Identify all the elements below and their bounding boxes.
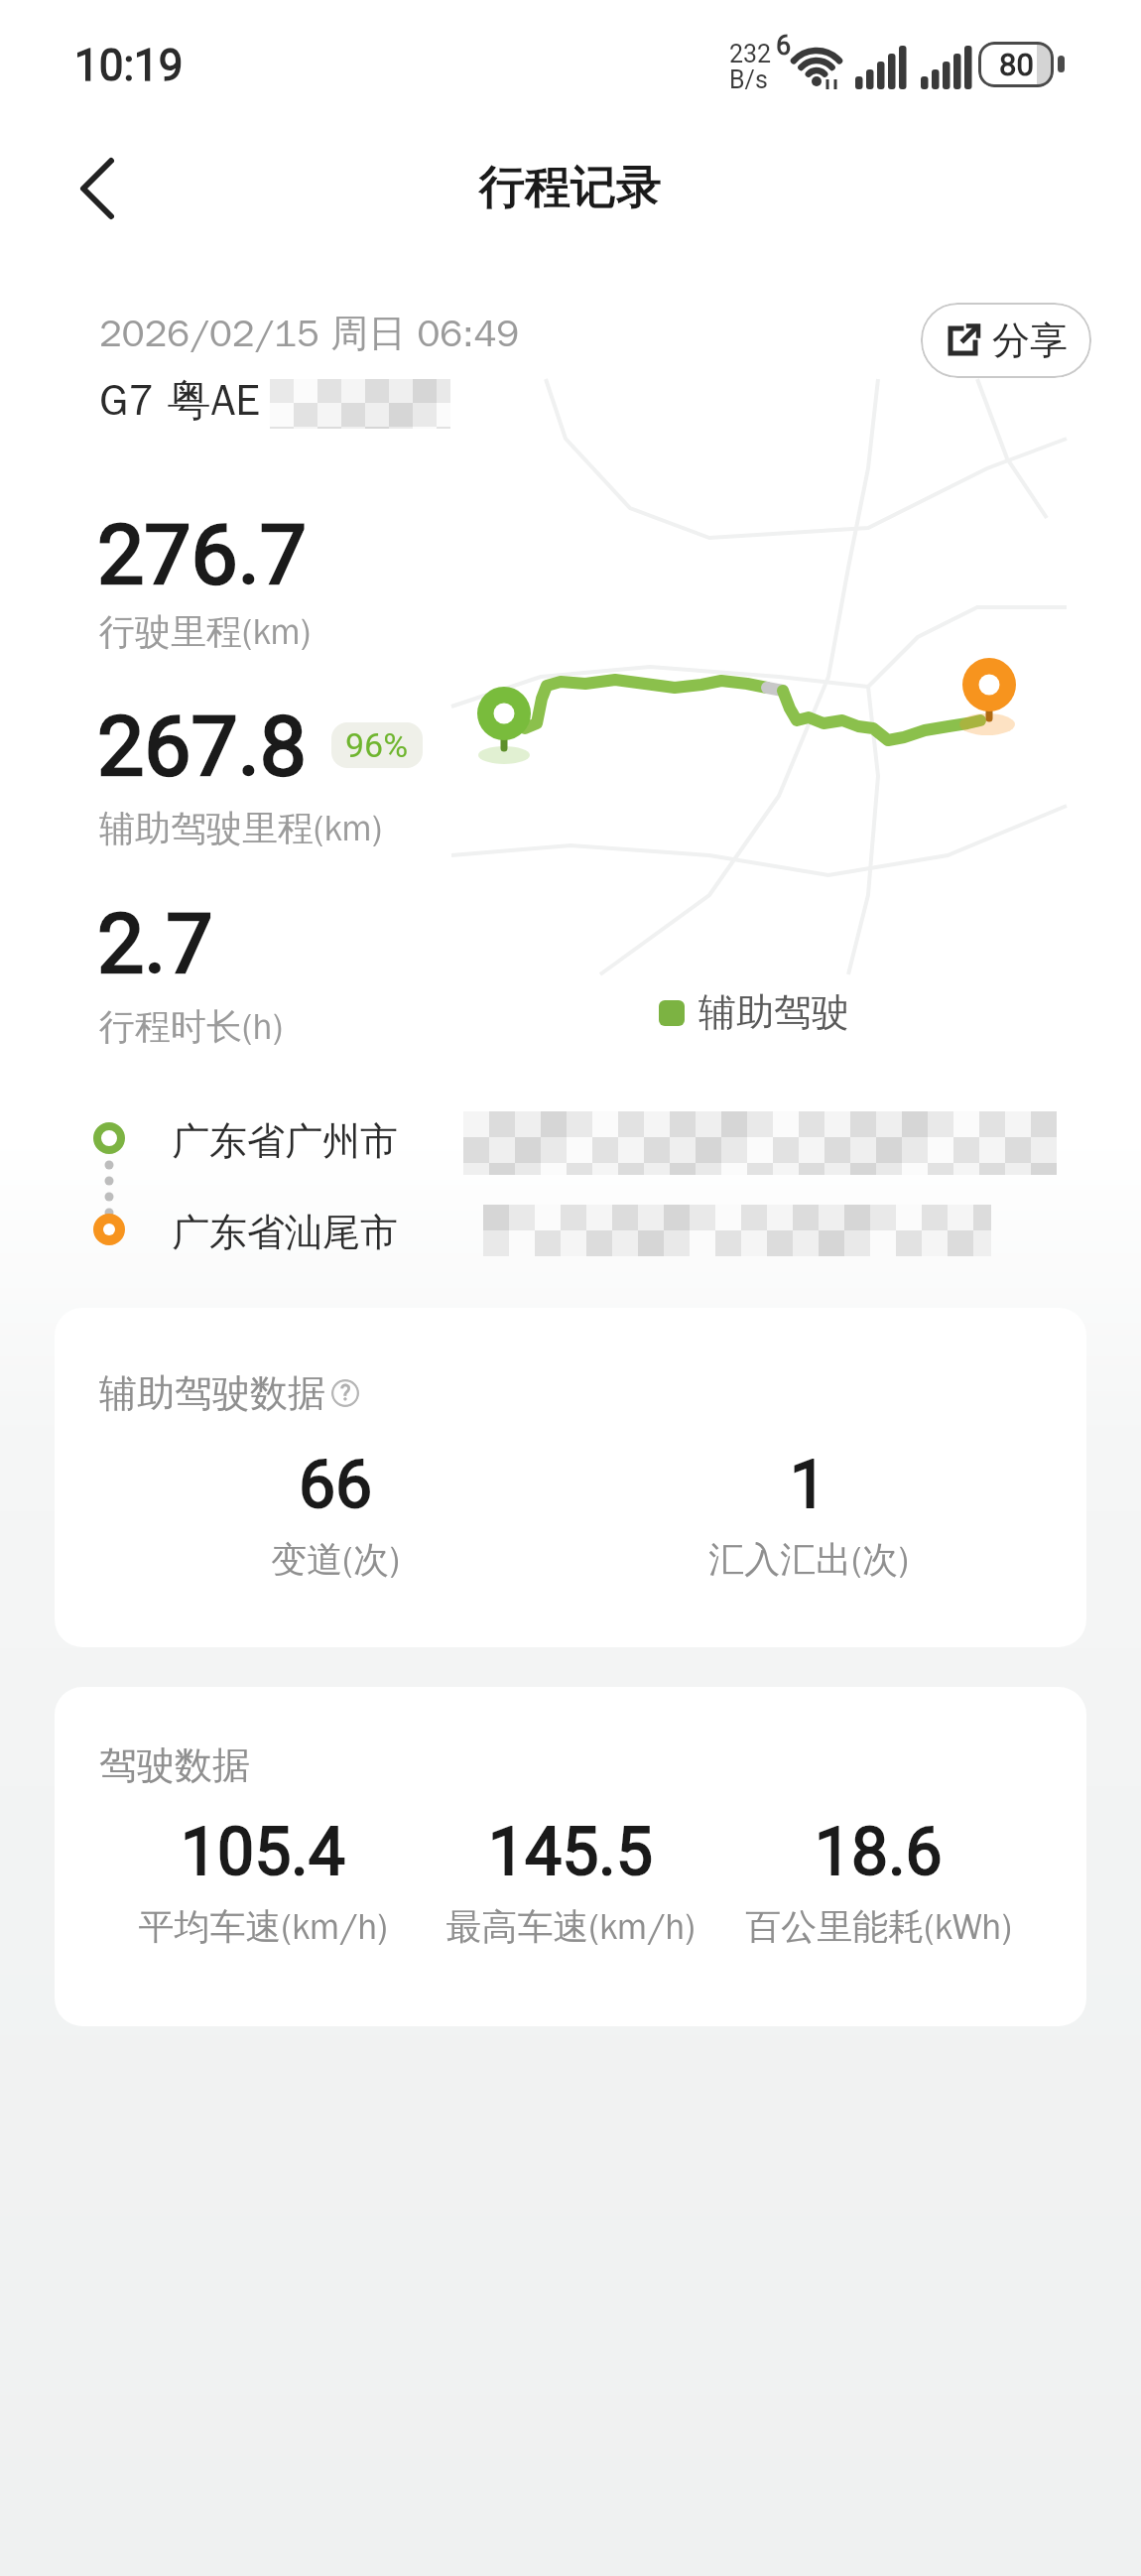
staticText: 平均车速(km/h)	[138, 1904, 388, 1949]
button[interactable]	[60, 149, 139, 228]
staticText: 百公里能耗(kWh)	[745, 1904, 1012, 1949]
staticText: 66	[299, 1447, 373, 1523]
staticText: 广东省汕尾市	[172, 1209, 398, 1256]
staticText: 1	[790, 1447, 827, 1523]
staticText: B/s	[729, 65, 768, 94]
staticText: 行程时长(h)	[99, 1004, 283, 1049]
staticText: 2026/02/15 周日 06:49	[99, 310, 520, 357]
staticText: G7 粤AE	[99, 373, 260, 428]
staticText: 行程记录	[479, 159, 662, 216]
staticText: 辅助驾驶数据	[99, 1369, 325, 1417]
staticText: 驾驶数据	[99, 1741, 250, 1789]
staticText: ?	[340, 1380, 351, 1406]
staticText: 18.6	[815, 1814, 943, 1890]
staticText: 232	[729, 40, 772, 68]
staticText: 96%	[345, 725, 409, 765]
button[interactable]: ?	[331, 1379, 359, 1407]
staticText: 广东省广州市	[172, 1117, 398, 1165]
staticText: 变道(次)	[271, 1537, 400, 1582]
staticText: 最高车速(km/h)	[445, 1904, 696, 1949]
staticText: 276.7	[97, 506, 307, 603]
staticText: 267.8	[97, 698, 307, 795]
staticText: 分享	[992, 317, 1068, 364]
staticText: 辅助驾驶里程(km)	[99, 806, 383, 850]
button[interactable]: 分享	[921, 303, 1091, 378]
staticText: 6	[776, 30, 792, 62]
staticText: 汇入汇出(次)	[708, 1537, 909, 1582]
staticText: 行驶里程(km)	[99, 609, 312, 654]
staticText: 105.4	[181, 1814, 345, 1890]
staticText: 80	[999, 47, 1034, 82]
staticText: 辅助驾驶	[698, 988, 849, 1036]
staticText: 145.5	[488, 1814, 653, 1890]
staticText: 2.7	[97, 895, 213, 992]
staticText: 10:19	[74, 40, 184, 91]
